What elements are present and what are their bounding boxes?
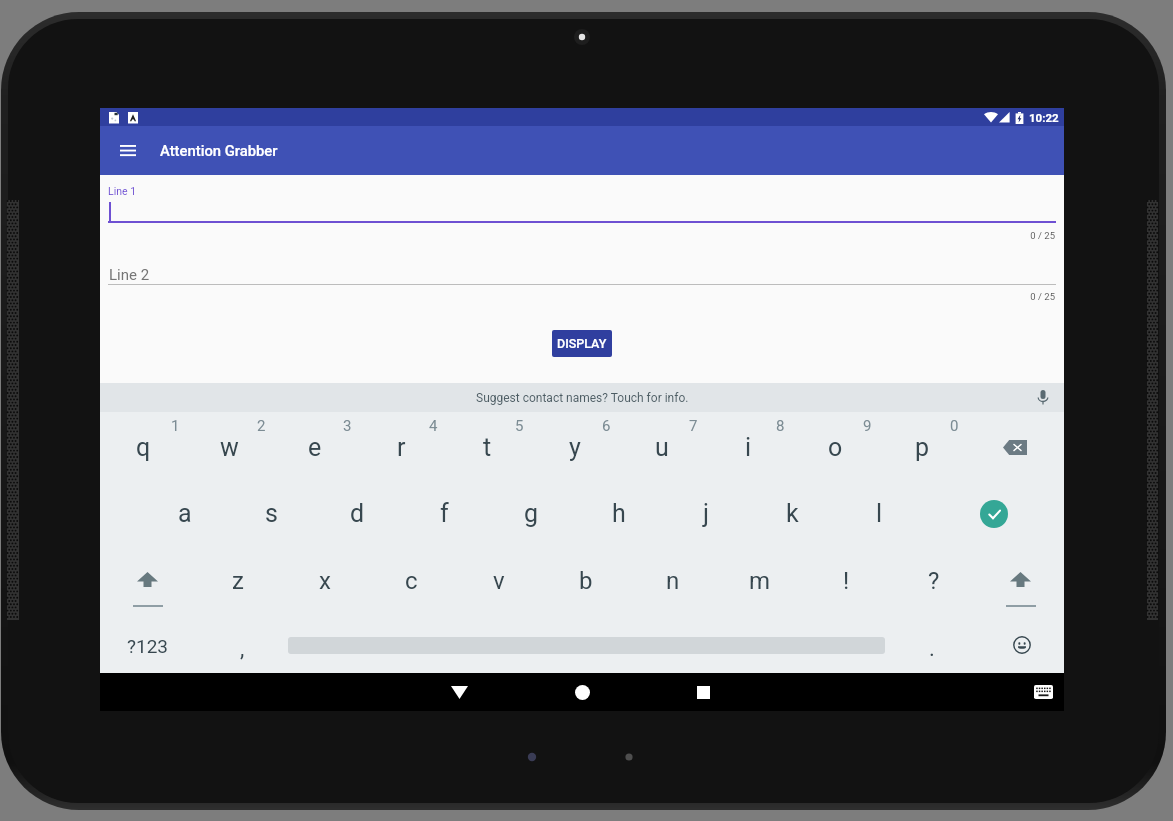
button[interactable]: Shift <box>977 547 1064 614</box>
staticText: c <box>405 567 418 595</box>
button[interactable]: 9 <box>792 412 879 480</box>
staticText: s <box>265 499 278 528</box>
button[interactable]: k <box>749 480 836 547</box>
button[interactable]: 3 <box>272 412 358 480</box>
button[interactable]: z <box>195 547 281 614</box>
staticText: 6 <box>602 417 611 435</box>
staticText: l <box>876 499 883 528</box>
staticText: 4 <box>429 417 438 435</box>
staticText: ? <box>928 567 940 595</box>
button[interactable]: Emoji <box>979 614 1064 673</box>
button[interactable]: Back <box>437 673 481 711</box>
button[interactable]: s <box>228 480 314 547</box>
button[interactable]: h <box>575 480 662 547</box>
button[interactable]: 5 <box>444 412 531 480</box>
staticText: k <box>786 499 799 528</box>
button[interactable]: Home <box>560 673 604 711</box>
staticText: 9 <box>863 417 872 435</box>
staticText: ! <box>843 567 850 595</box>
button[interactable]: . <box>885 614 979 673</box>
button[interactable]: ? <box>890 547 977 614</box>
button[interactable]: v <box>455 547 542 614</box>
staticText: Suggest contact names? Touch for info. <box>476 391 689 405</box>
staticText: Line 1 <box>108 185 137 197</box>
button[interactable]: 1 <box>100 412 186 480</box>
button[interactable]: Backspace <box>966 412 1064 480</box>
button[interactable]: 4 <box>358 412 444 480</box>
staticText: n <box>666 567 680 595</box>
staticText: 0 / 25 <box>100 291 1055 302</box>
button[interactable]: 6 <box>531 412 618 480</box>
button[interactable]: Enter <box>923 480 1064 547</box>
button[interactable]: 7 <box>618 412 705 480</box>
staticText: . <box>929 636 935 662</box>
staticText: t <box>483 433 492 462</box>
button[interactable]: 0 <box>879 412 966 480</box>
button[interactable]: ! <box>803 547 890 614</box>
staticText: p <box>915 433 930 462</box>
staticText: w <box>220 433 239 462</box>
staticText: j <box>703 499 709 528</box>
button[interactable]: x <box>281 547 368 614</box>
staticText: 8 <box>776 417 785 435</box>
button[interactable]: Recent apps <box>681 673 725 711</box>
staticText: f <box>440 499 449 528</box>
staticText: d <box>350 499 365 528</box>
staticText: g <box>524 499 539 528</box>
staticText: u <box>655 433 669 462</box>
staticText: v <box>493 567 505 595</box>
staticText: b <box>579 567 593 595</box>
button[interactable]: a <box>142 480 228 547</box>
staticText: Line 2 <box>109 266 150 284</box>
staticText: 7 <box>689 417 698 435</box>
staticText: r <box>397 433 406 462</box>
button[interactable]: Shift <box>100 547 195 614</box>
button[interactable]: j <box>662 480 749 547</box>
staticText: 0 <box>950 417 959 435</box>
staticText: ?123 <box>127 635 169 657</box>
button[interactable]: 8 <box>705 412 792 480</box>
button[interactable]: l <box>836 480 923 547</box>
button[interactable]: 2 <box>186 412 272 480</box>
button[interactable]: DISPLAY <box>552 330 612 357</box>
staticText: 1 <box>171 417 180 435</box>
staticText: h <box>612 499 626 528</box>
staticText: i <box>745 433 752 462</box>
staticText: o <box>828 433 843 462</box>
button[interactable]: ?123 <box>100 614 196 673</box>
staticText: z <box>232 567 244 595</box>
staticText: 0 / 25 <box>100 230 1055 241</box>
button[interactable]: g <box>488 480 575 547</box>
staticText: x <box>319 567 331 595</box>
button[interactable]: Hide keyboard <box>1028 677 1058 707</box>
button[interactable]: Open navigation drawer <box>107 126 149 175</box>
staticText: m <box>749 567 771 595</box>
staticText: 10:22 <box>1029 111 1059 124</box>
staticText: q <box>136 433 151 462</box>
button[interactable]: m <box>716 547 803 614</box>
staticText: 5 <box>515 417 524 435</box>
button[interactable]: f <box>401 480 488 547</box>
staticText: , <box>240 636 245 662</box>
staticText: Attention Grabber <box>160 142 278 159</box>
button[interactable]: , <box>196 614 288 673</box>
button[interactable]: Voice input <box>1032 387 1054 409</box>
button[interactable]: d <box>314 480 401 547</box>
button[interactable]: Space <box>288 614 885 673</box>
button[interactable]: n <box>629 547 716 614</box>
staticText: 3 <box>343 417 352 435</box>
staticText: DISPLAY <box>557 336 607 351</box>
button[interactable]: c <box>368 547 455 614</box>
button[interactable]: b <box>542 547 629 614</box>
staticText: e <box>308 433 322 462</box>
staticText: 2 <box>257 417 266 435</box>
staticText: a <box>178 499 192 528</box>
staticText: y <box>569 433 581 462</box>
